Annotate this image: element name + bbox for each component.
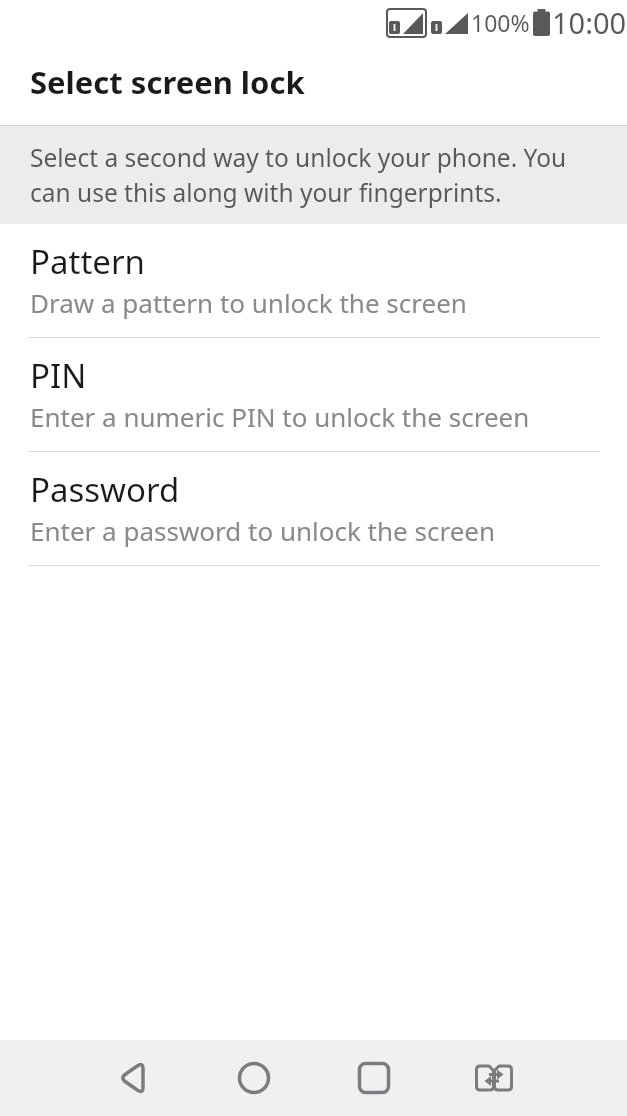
button[interactable]: PIN — [0, 338, 627, 452]
staticText: Select a second way to unlock your phone… — [30, 141, 567, 210]
staticText: PIN — [30, 353, 87, 398]
button[interactable] — [194, 1040, 314, 1116]
button[interactable] — [434, 1040, 554, 1116]
staticText: 10:00 — [552, 3, 627, 42]
staticText: Pattern — [30, 239, 145, 284]
staticText: 100% — [471, 7, 530, 38]
button[interactable] — [74, 1040, 194, 1116]
staticText: Enter a numeric PIN to unlock the screen — [30, 399, 530, 434]
button[interactable]: Pattern — [0, 224, 627, 338]
staticText: Password — [30, 467, 180, 512]
button[interactable]: Password — [0, 452, 627, 566]
button[interactable] — [314, 1040, 434, 1116]
staticText: Select screen lock — [30, 61, 305, 103]
staticText: Enter a password to unlock the screen — [30, 513, 496, 548]
staticText: Draw a pattern to unlock the screen — [30, 285, 467, 320]
